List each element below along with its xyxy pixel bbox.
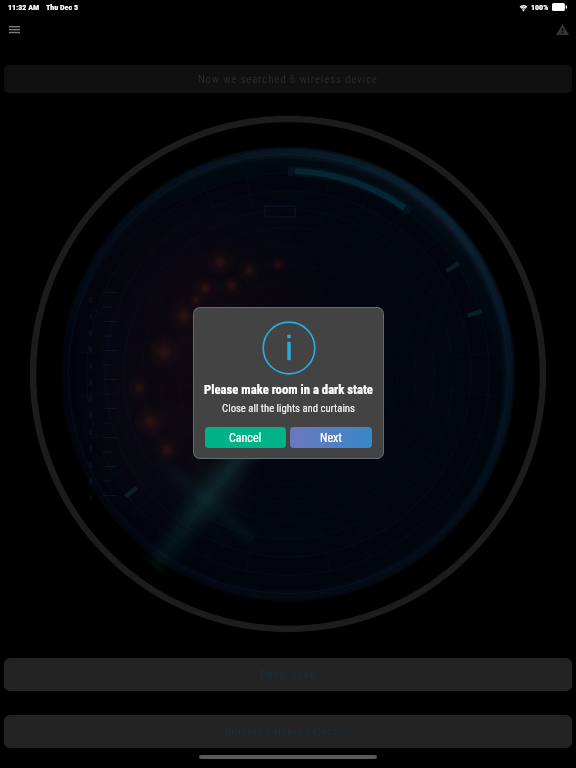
button[interactable]: Next: [290, 427, 372, 448]
staticText: Cancel: [229, 431, 262, 445]
staticText: Deep Scan: [260, 668, 317, 681]
staticText: Thu Dec 5: [46, 3, 78, 12]
button[interactable]: Warning: [550, 17, 574, 41]
button[interactable]: Cancel: [205, 427, 286, 448]
staticText: Please make room in a dark state: [204, 382, 373, 397]
staticText: Next: [320, 431, 342, 445]
staticText: 11:32 AM: [8, 3, 40, 12]
staticText: Now we searched 6 wireless device: [198, 73, 378, 86]
staticText: Close all the lights and curtains: [222, 402, 355, 415]
staticText: 100%: [531, 3, 549, 12]
button[interactable]: Now we searched 6 wireless device: [4, 65, 572, 93]
staticText: Infrared camera detection: [225, 725, 352, 738]
button[interactable]: Menu: [2, 17, 26, 41]
